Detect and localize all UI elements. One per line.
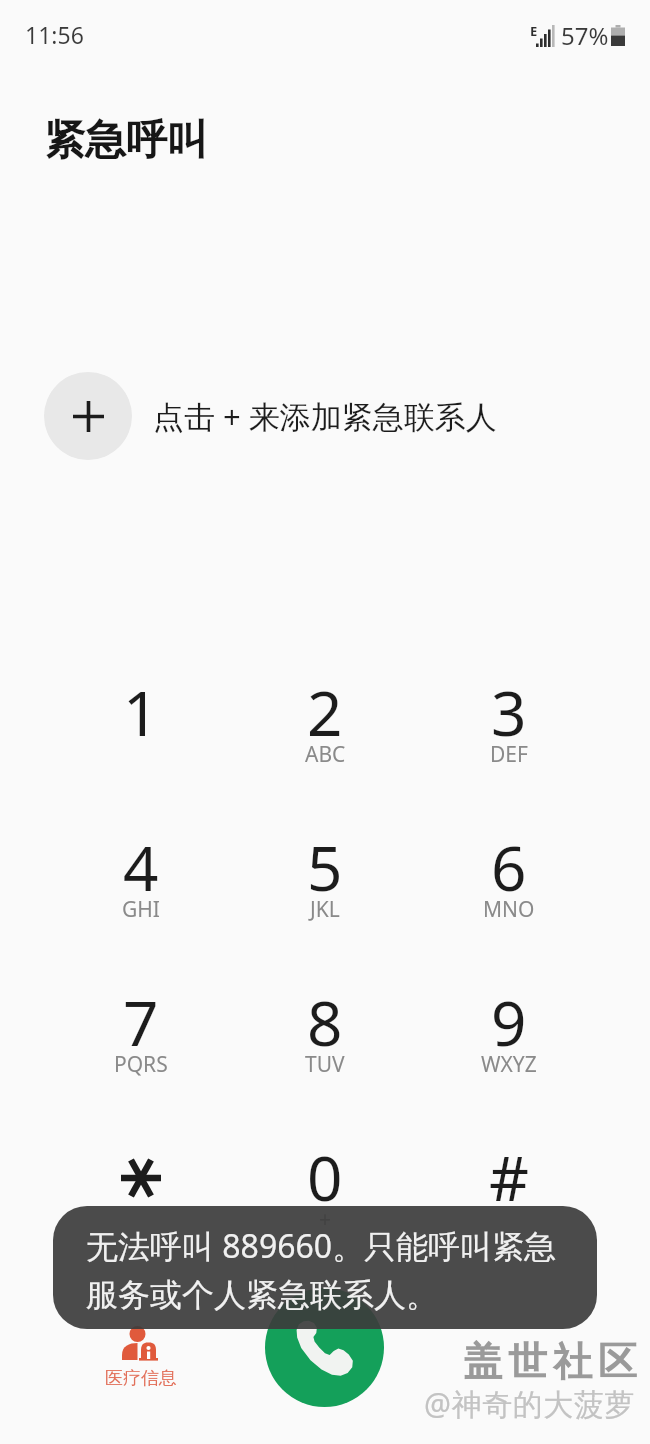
button[interactable]: # bbox=[439, 1129, 579, 1259]
staticText: 8 bbox=[307, 980, 343, 1064]
staticText: # bbox=[489, 1135, 530, 1219]
staticText: PQRS bbox=[114, 1050, 168, 1079]
staticText: 3 bbox=[491, 670, 527, 754]
button[interactable]: Star bbox=[71, 1129, 211, 1259]
staticText: 5 bbox=[307, 825, 343, 909]
staticText: 7 bbox=[123, 980, 159, 1064]
staticText: 点击 + 来添加紧急联系人 bbox=[153, 395, 497, 437]
staticText: 57% bbox=[561, 19, 609, 52]
staticText: ABC bbox=[305, 740, 346, 769]
staticText: 9 bbox=[491, 980, 527, 1064]
button[interactable]: Call bbox=[265, 1288, 384, 1407]
button[interactable]: 3 bbox=[439, 664, 579, 794]
button[interactable]: 2 bbox=[255, 664, 395, 794]
staticText: 1 bbox=[123, 670, 159, 754]
staticText: JKL bbox=[310, 895, 340, 924]
staticText: TUV bbox=[305, 1050, 345, 1079]
staticText: @神奇的大菠萝 bbox=[424, 1383, 636, 1424]
staticText: GHI bbox=[122, 895, 160, 924]
button[interactable]: 点击 + 来添加紧急联系人 bbox=[0, 368, 650, 464]
staticText: DEF bbox=[490, 740, 528, 769]
button[interactable]: 9 bbox=[439, 974, 579, 1104]
button[interactable]: 8 bbox=[255, 974, 395, 1104]
staticText: 无法呼叫 889660。只能呼叫紧急 服务或个人紧急联系人。 bbox=[86, 1224, 557, 1315]
staticText: 4 bbox=[123, 825, 159, 909]
staticText: 2 bbox=[307, 670, 343, 754]
staticText: 6 bbox=[491, 825, 527, 909]
staticText: 11:56 bbox=[25, 19, 84, 50]
staticText: 紧急呼叫 bbox=[44, 115, 208, 167]
button[interactable]: 医疗信息 bbox=[91, 1325, 191, 1405]
button[interactable]: 0 bbox=[255, 1129, 395, 1259]
button[interactable]: 6 bbox=[439, 819, 579, 949]
staticText: 医疗信息 bbox=[105, 1367, 177, 1390]
staticText: WXYZ bbox=[481, 1050, 537, 1079]
button[interactable]: 7 bbox=[71, 974, 211, 1104]
staticText: E bbox=[530, 22, 538, 40]
button[interactable]: 4 bbox=[71, 819, 211, 949]
staticText: + bbox=[319, 1205, 332, 1234]
staticText: MNO bbox=[483, 895, 535, 924]
staticText: 盖世社区 bbox=[460, 1337, 640, 1386]
button[interactable]: 5 bbox=[255, 819, 395, 949]
button[interactable]: 1 bbox=[71, 664, 211, 794]
staticText: 0 bbox=[307, 1135, 343, 1219]
